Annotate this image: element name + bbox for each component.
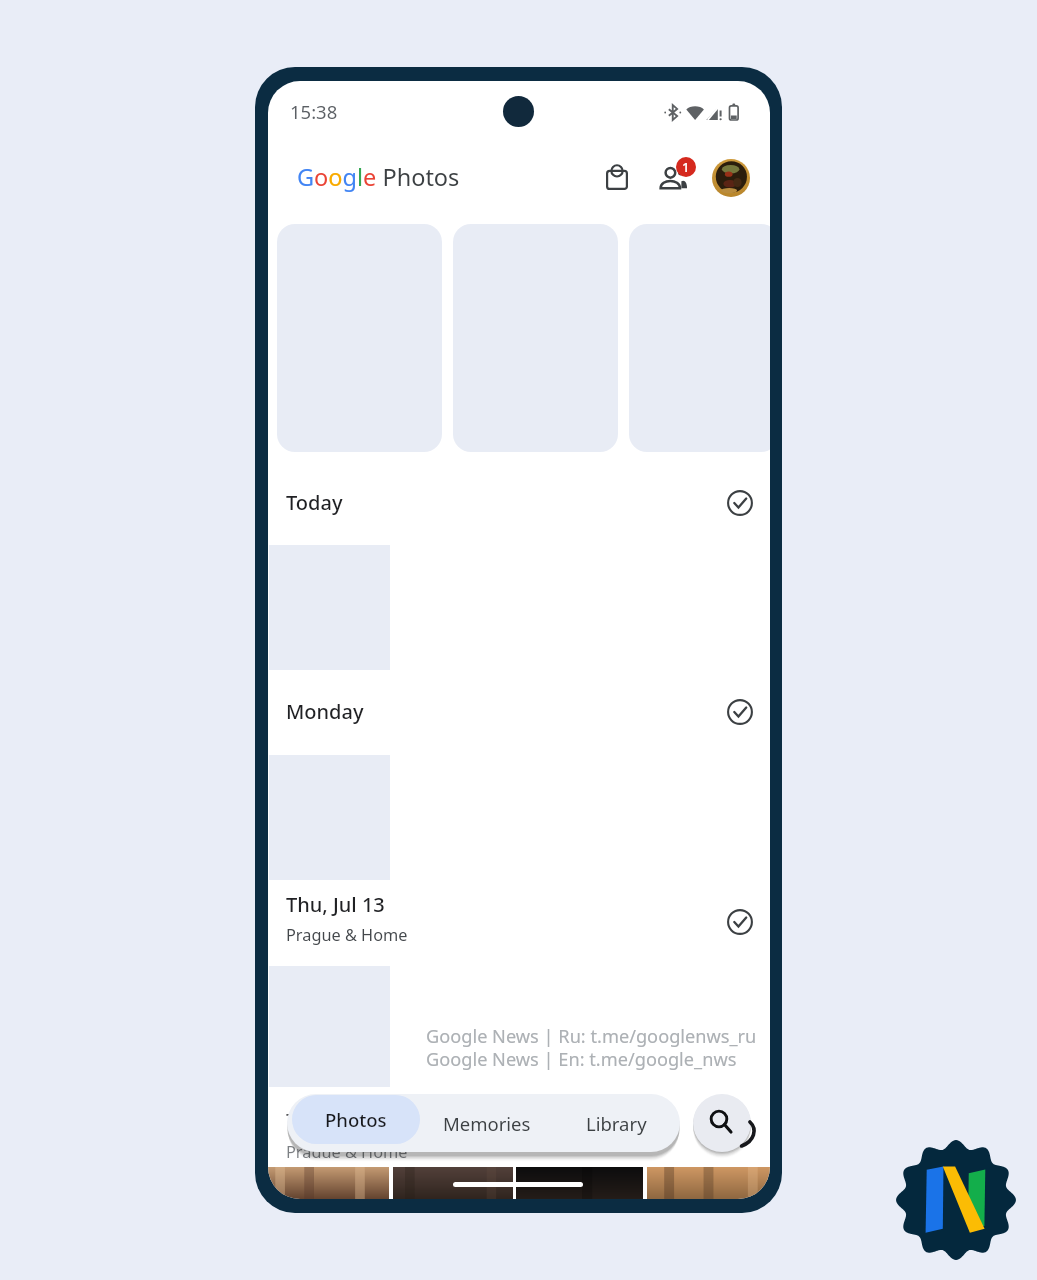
staticText: Prague & Home — [286, 924, 408, 946]
staticText: Today — [286, 489, 343, 516]
button[interactable] — [647, 1167, 770, 1199]
staticText: Thu, Jul 13 — [286, 1107, 385, 1134]
staticText: 1 — [682, 158, 690, 176]
button[interactable] — [268, 1167, 389, 1199]
staticText: Google Photos — [297, 161, 460, 193]
staticText: Prague & Home — [286, 1141, 408, 1163]
button[interactable]: Google Photos — [292, 155, 460, 199]
button[interactable]: Account — [712, 159, 750, 197]
staticText: Thu, Jul 13 — [286, 891, 385, 918]
staticText: Photos — [325, 1107, 387, 1132]
staticText: Google News | Ru: t.me/googlenws_ru — [426, 1024, 757, 1049]
button[interactable]: Thu, Jul 13 — [268, 883, 770, 955]
staticText: 15:38 — [290, 99, 338, 124]
staticText: Memories — [443, 1111, 531, 1136]
button[interactable]: Photos — [292, 1095, 420, 1144]
button[interactable] — [393, 1167, 513, 1199]
button[interactable]: Search — [693, 1094, 751, 1152]
button[interactable] — [516, 1167, 643, 1199]
staticText: Monday — [286, 698, 364, 725]
button[interactable]: Sharing — [651, 155, 696, 200]
staticText: Google News | En: t.me/google_nws — [426, 1047, 737, 1072]
button[interactable]: Today — [268, 475, 770, 531]
button[interactable]: Select all — [718, 900, 762, 944]
button[interactable]: Memories — [420, 1094, 553, 1152]
button[interactable]: Monday — [268, 684, 770, 740]
button[interactable]: Library — [553, 1094, 680, 1152]
button[interactable]: Select all — [718, 481, 762, 525]
button[interactable]: Select all — [718, 690, 762, 734]
button[interactable]: Print store — [594, 155, 639, 200]
staticText: Library — [586, 1111, 647, 1136]
